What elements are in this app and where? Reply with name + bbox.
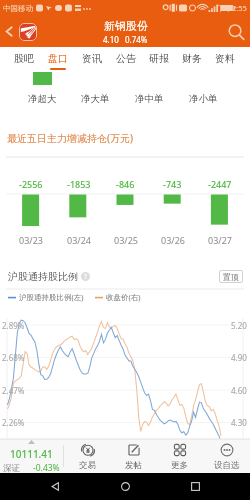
staticText: -846 (116, 178, 135, 190)
staticText: 0.74% (125, 34, 148, 45)
staticText: 03/23 (19, 234, 43, 246)
button[interactable]: 公告 (109, 47, 142, 72)
staticText: -2447 (208, 178, 232, 190)
staticText: -1853 (67, 178, 91, 190)
staticText: 研报 (149, 52, 169, 65)
staticText: -0.43% (33, 462, 60, 474)
button[interactable]: 设自选 (203, 439, 250, 473)
button[interactable]: Recent apps (180, 473, 210, 500)
staticText: 更多 (171, 460, 188, 471)
staticText: 设自选 (214, 460, 240, 471)
staticText: 置顶 (223, 272, 239, 282)
staticText: 盘口 (48, 52, 68, 65)
staticText: 净大单 (81, 93, 110, 105)
staticText: 净中单 (135, 93, 164, 105)
staticText: 2.47% (2, 385, 25, 396)
button[interactable]: 置顶 (219, 270, 243, 283)
staticText: 发帖 (125, 460, 142, 471)
button[interactable]: Help (81, 272, 90, 281)
staticText: 下午2:55 (217, 3, 247, 13)
staticText: ? (84, 272, 87, 281)
staticText: 资讯 (82, 52, 102, 65)
button[interactable]: 股吧 (7, 47, 41, 72)
staticText: 最近五日主力增减持仓(万元) (7, 131, 133, 145)
button[interactable]: 资料 (208, 47, 241, 72)
staticText: 资料 (215, 52, 235, 65)
button[interactable]: 发帖 (110, 439, 156, 473)
staticText: 03/24 (67, 234, 91, 246)
staticText: 公告 (116, 52, 136, 65)
button[interactable]: App logo (19, 23, 37, 41)
button[interactable]: 净中单 (122, 72, 176, 105)
button[interactable]: 交易 (64, 439, 110, 473)
button[interactable]: Back (0, 16, 19, 47)
button[interactable]: Back (40, 473, 70, 500)
staticText: 深证 (3, 463, 20, 474)
staticText: 2.89% (2, 320, 25, 331)
staticText: 03/25 (114, 234, 138, 246)
staticText: 新钢股份 (104, 19, 148, 33)
staticText: 净小单 (189, 93, 218, 105)
staticText: 沪股通持股比例(左) (19, 292, 84, 302)
staticText: 股吧 (14, 52, 34, 65)
button[interactable]: 盘口 (41, 47, 75, 72)
staticText: 净超大 (28, 93, 57, 105)
staticText: 03/27 (208, 234, 232, 246)
staticText: 4.10 (103, 34, 119, 45)
staticText: -743 (163, 178, 182, 190)
staticText: 交易 (79, 460, 96, 471)
staticText: -2556 (19, 178, 43, 190)
staticText: 4.30 (231, 417, 247, 428)
button[interactable]: 净超大 (16, 72, 69, 105)
button[interactable]: Home (110, 473, 140, 500)
button[interactable]: 研报 (142, 47, 175, 72)
staticText: 4.90 (231, 352, 247, 363)
staticText: 2.26% (2, 417, 25, 428)
button[interactable]: 10111.41 (0, 439, 63, 473)
button[interactable]: 更多 (156, 439, 203, 473)
staticText: 财务 (182, 52, 202, 65)
button[interactable]: 净小单 (176, 72, 230, 105)
staticText: 4.60 (231, 385, 247, 396)
staticText: 2.68% (2, 352, 25, 363)
staticText: 中国移动 (3, 4, 33, 13)
staticText: 10111.41 (10, 447, 53, 461)
staticText: 5.20 (231, 320, 247, 331)
button[interactable]: Search (222, 16, 250, 47)
button[interactable]: 资讯 (75, 47, 109, 72)
staticText: 收盘价(右) (106, 292, 141, 302)
staticText: 沪股通持股比例 (8, 270, 78, 283)
button[interactable]: 净大单 (69, 72, 122, 105)
button[interactable]: 财务 (175, 47, 208, 72)
staticText: 03/26 (161, 234, 185, 246)
